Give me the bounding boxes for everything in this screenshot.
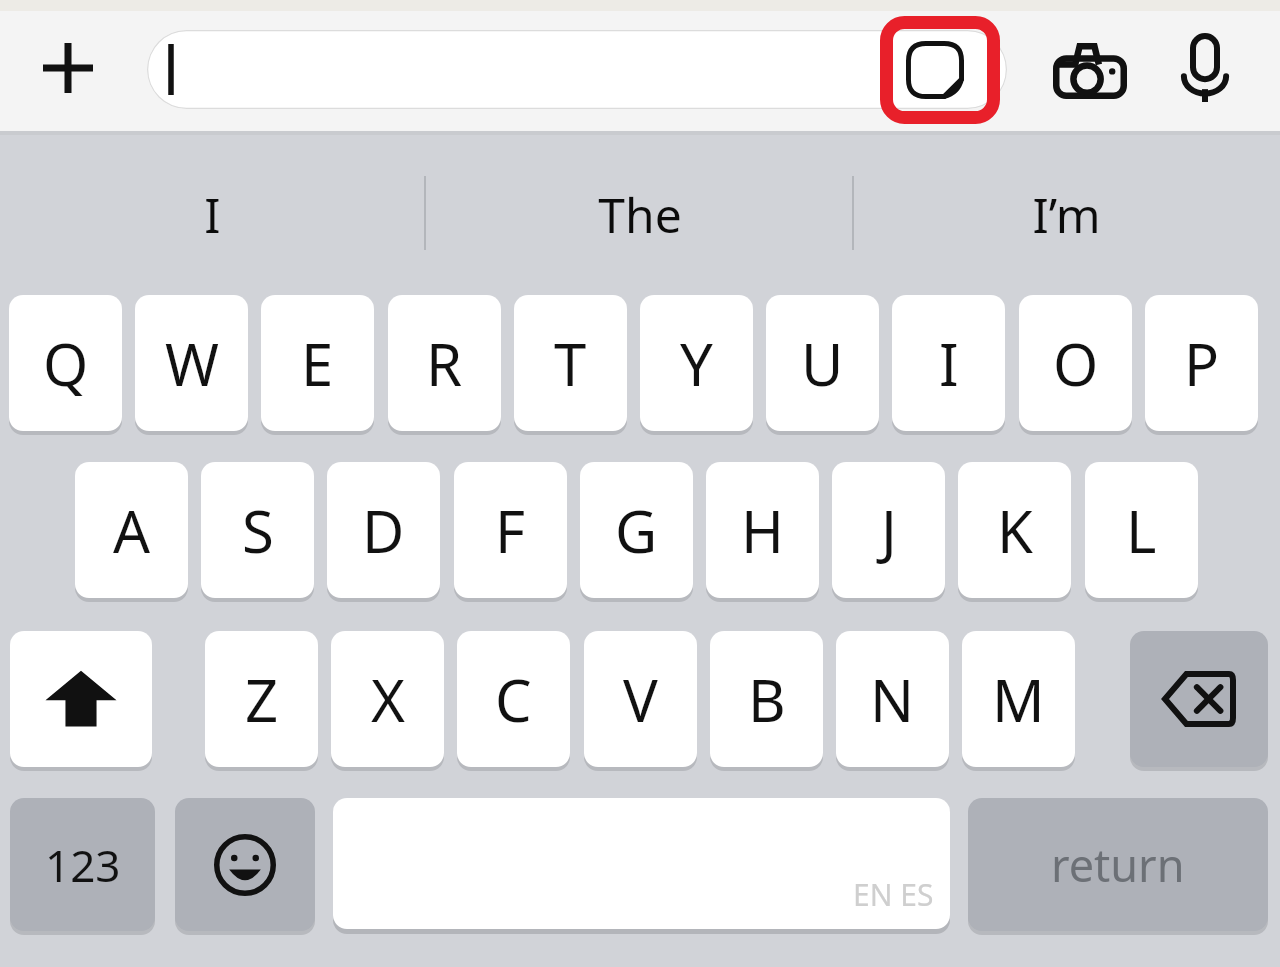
button[interactable]: Emoji bbox=[175, 798, 315, 931]
button[interactable]: G bbox=[580, 462, 693, 598]
staticText: G bbox=[615, 491, 658, 570]
staticText: Z bbox=[245, 660, 279, 739]
button[interactable]: Backspace bbox=[1130, 631, 1268, 767]
button[interactable]: F bbox=[454, 462, 567, 598]
button[interactable]: E bbox=[261, 295, 374, 431]
button[interactable]: M bbox=[962, 631, 1075, 767]
staticText: N bbox=[870, 660, 915, 739]
staticText: I’m bbox=[1032, 182, 1101, 247]
button[interactable]: Voice message bbox=[1165, 26, 1245, 112]
button[interactable]: D bbox=[327, 462, 440, 598]
staticText: R bbox=[426, 324, 463, 403]
staticText: The bbox=[598, 182, 682, 247]
button[interactable]: I bbox=[102, 150, 322, 278]
button[interactable]: P bbox=[1145, 295, 1258, 431]
staticText: S bbox=[242, 491, 274, 570]
button[interactable]: L bbox=[1085, 462, 1198, 598]
button[interactable]: 123 bbox=[10, 798, 155, 931]
staticText: T bbox=[554, 324, 587, 403]
button[interactable]: X bbox=[331, 631, 444, 767]
staticText: EN ES bbox=[853, 874, 934, 915]
button[interactable]: The bbox=[530, 150, 750, 278]
staticText: F bbox=[495, 491, 526, 570]
button[interactable]: H bbox=[706, 462, 819, 598]
staticText: E bbox=[301, 324, 334, 403]
staticText: U bbox=[801, 324, 844, 403]
staticText: C bbox=[495, 660, 532, 739]
staticText: K bbox=[997, 491, 1033, 570]
button[interactable]: Stickers bbox=[905, 40, 965, 100]
button[interactable]: C bbox=[457, 631, 570, 767]
button[interactable]: I bbox=[892, 295, 1005, 431]
staticText: 123 bbox=[45, 835, 121, 895]
button[interactable]: Add attachment bbox=[28, 28, 108, 108]
button[interactable]: T bbox=[514, 295, 627, 431]
staticText: M bbox=[992, 660, 1045, 739]
button[interactable]: Q bbox=[9, 295, 122, 431]
staticText: B bbox=[748, 660, 786, 739]
staticText: V bbox=[623, 660, 658, 739]
staticText: D bbox=[362, 491, 405, 570]
button[interactable]: S bbox=[201, 462, 314, 598]
staticText: A bbox=[113, 491, 151, 570]
staticText: P bbox=[1184, 324, 1220, 403]
staticText: return bbox=[1051, 834, 1185, 895]
button[interactable]: return bbox=[968, 798, 1268, 931]
staticText: H bbox=[741, 491, 784, 570]
button[interactable]: O bbox=[1019, 295, 1132, 431]
staticText: O bbox=[1053, 324, 1099, 403]
button[interactable]: K bbox=[958, 462, 1071, 598]
staticText: X bbox=[371, 660, 405, 739]
staticText: I bbox=[204, 182, 221, 247]
staticText: L bbox=[1126, 491, 1157, 570]
button[interactable]: Camera bbox=[1045, 30, 1135, 110]
button[interactable]: B bbox=[710, 631, 823, 767]
button[interactable]: Z bbox=[205, 631, 318, 767]
button[interactable]: EN ES bbox=[333, 798, 950, 929]
button[interactable]: Shift bbox=[10, 631, 152, 767]
button[interactable]: J bbox=[832, 462, 945, 598]
button[interactable]: A bbox=[75, 462, 188, 598]
button[interactable]: W bbox=[135, 295, 248, 431]
button[interactable]: Y bbox=[640, 295, 753, 431]
staticText: Y bbox=[680, 324, 713, 403]
staticText: J bbox=[881, 491, 897, 570]
button[interactable]: I’m bbox=[956, 150, 1176, 278]
button[interactable] bbox=[147, 30, 1007, 109]
button[interactable]: U bbox=[766, 295, 879, 431]
staticText: W bbox=[165, 324, 219, 403]
button[interactable]: V bbox=[584, 631, 697, 767]
button[interactable]: N bbox=[836, 631, 949, 767]
staticText: Q bbox=[43, 324, 89, 403]
staticText: I bbox=[939, 324, 959, 403]
button[interactable]: R bbox=[388, 295, 501, 431]
